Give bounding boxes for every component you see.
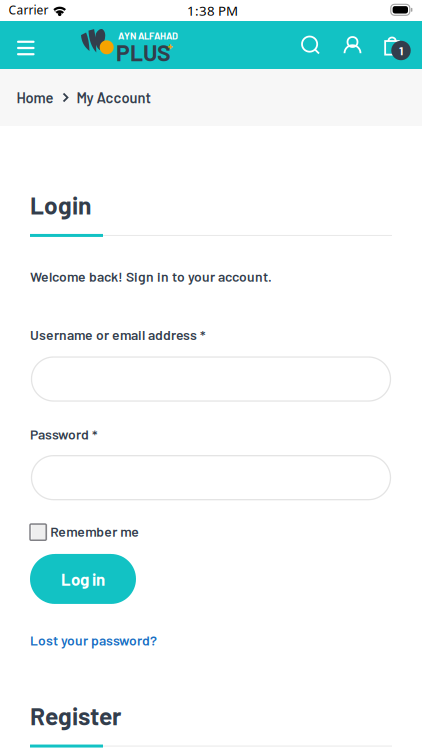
staticText: + — [167, 39, 173, 53]
button[interactable]: Cart — [370, 21, 410, 69]
staticText: Lost your password? — [30, 632, 157, 648]
staticText: Remember me — [50, 523, 139, 539]
button[interactable]: Lost your password? — [30, 632, 157, 648]
button[interactable]: Home — [16, 89, 53, 106]
staticText: 1 — [399, 43, 403, 58]
staticText: Home — [16, 89, 53, 106]
staticText: AYN ALFAHAD — [118, 30, 178, 41]
staticText: PLUS — [116, 38, 171, 66]
staticText: Login — [30, 190, 91, 219]
staticText: Carrier — [9, 2, 49, 18]
staticText: Welcome back! Sign in to your account. — [30, 268, 272, 284]
button[interactable]: Account — [330, 21, 370, 69]
staticText: Register — [30, 701, 121, 730]
button[interactable]: Log in — [30, 554, 136, 604]
staticText: Password * — [30, 426, 98, 442]
button[interactable]: Search — [290, 21, 330, 69]
button[interactable]: Remember me — [30, 524, 139, 541]
staticText: Log in — [61, 569, 105, 589]
staticText: Username or email address * — [30, 326, 206, 343]
button[interactable]: Menu — [4, 24, 48, 72]
staticText: 1:38 PM — [187, 2, 238, 19]
staticText: My Account — [76, 89, 150, 106]
